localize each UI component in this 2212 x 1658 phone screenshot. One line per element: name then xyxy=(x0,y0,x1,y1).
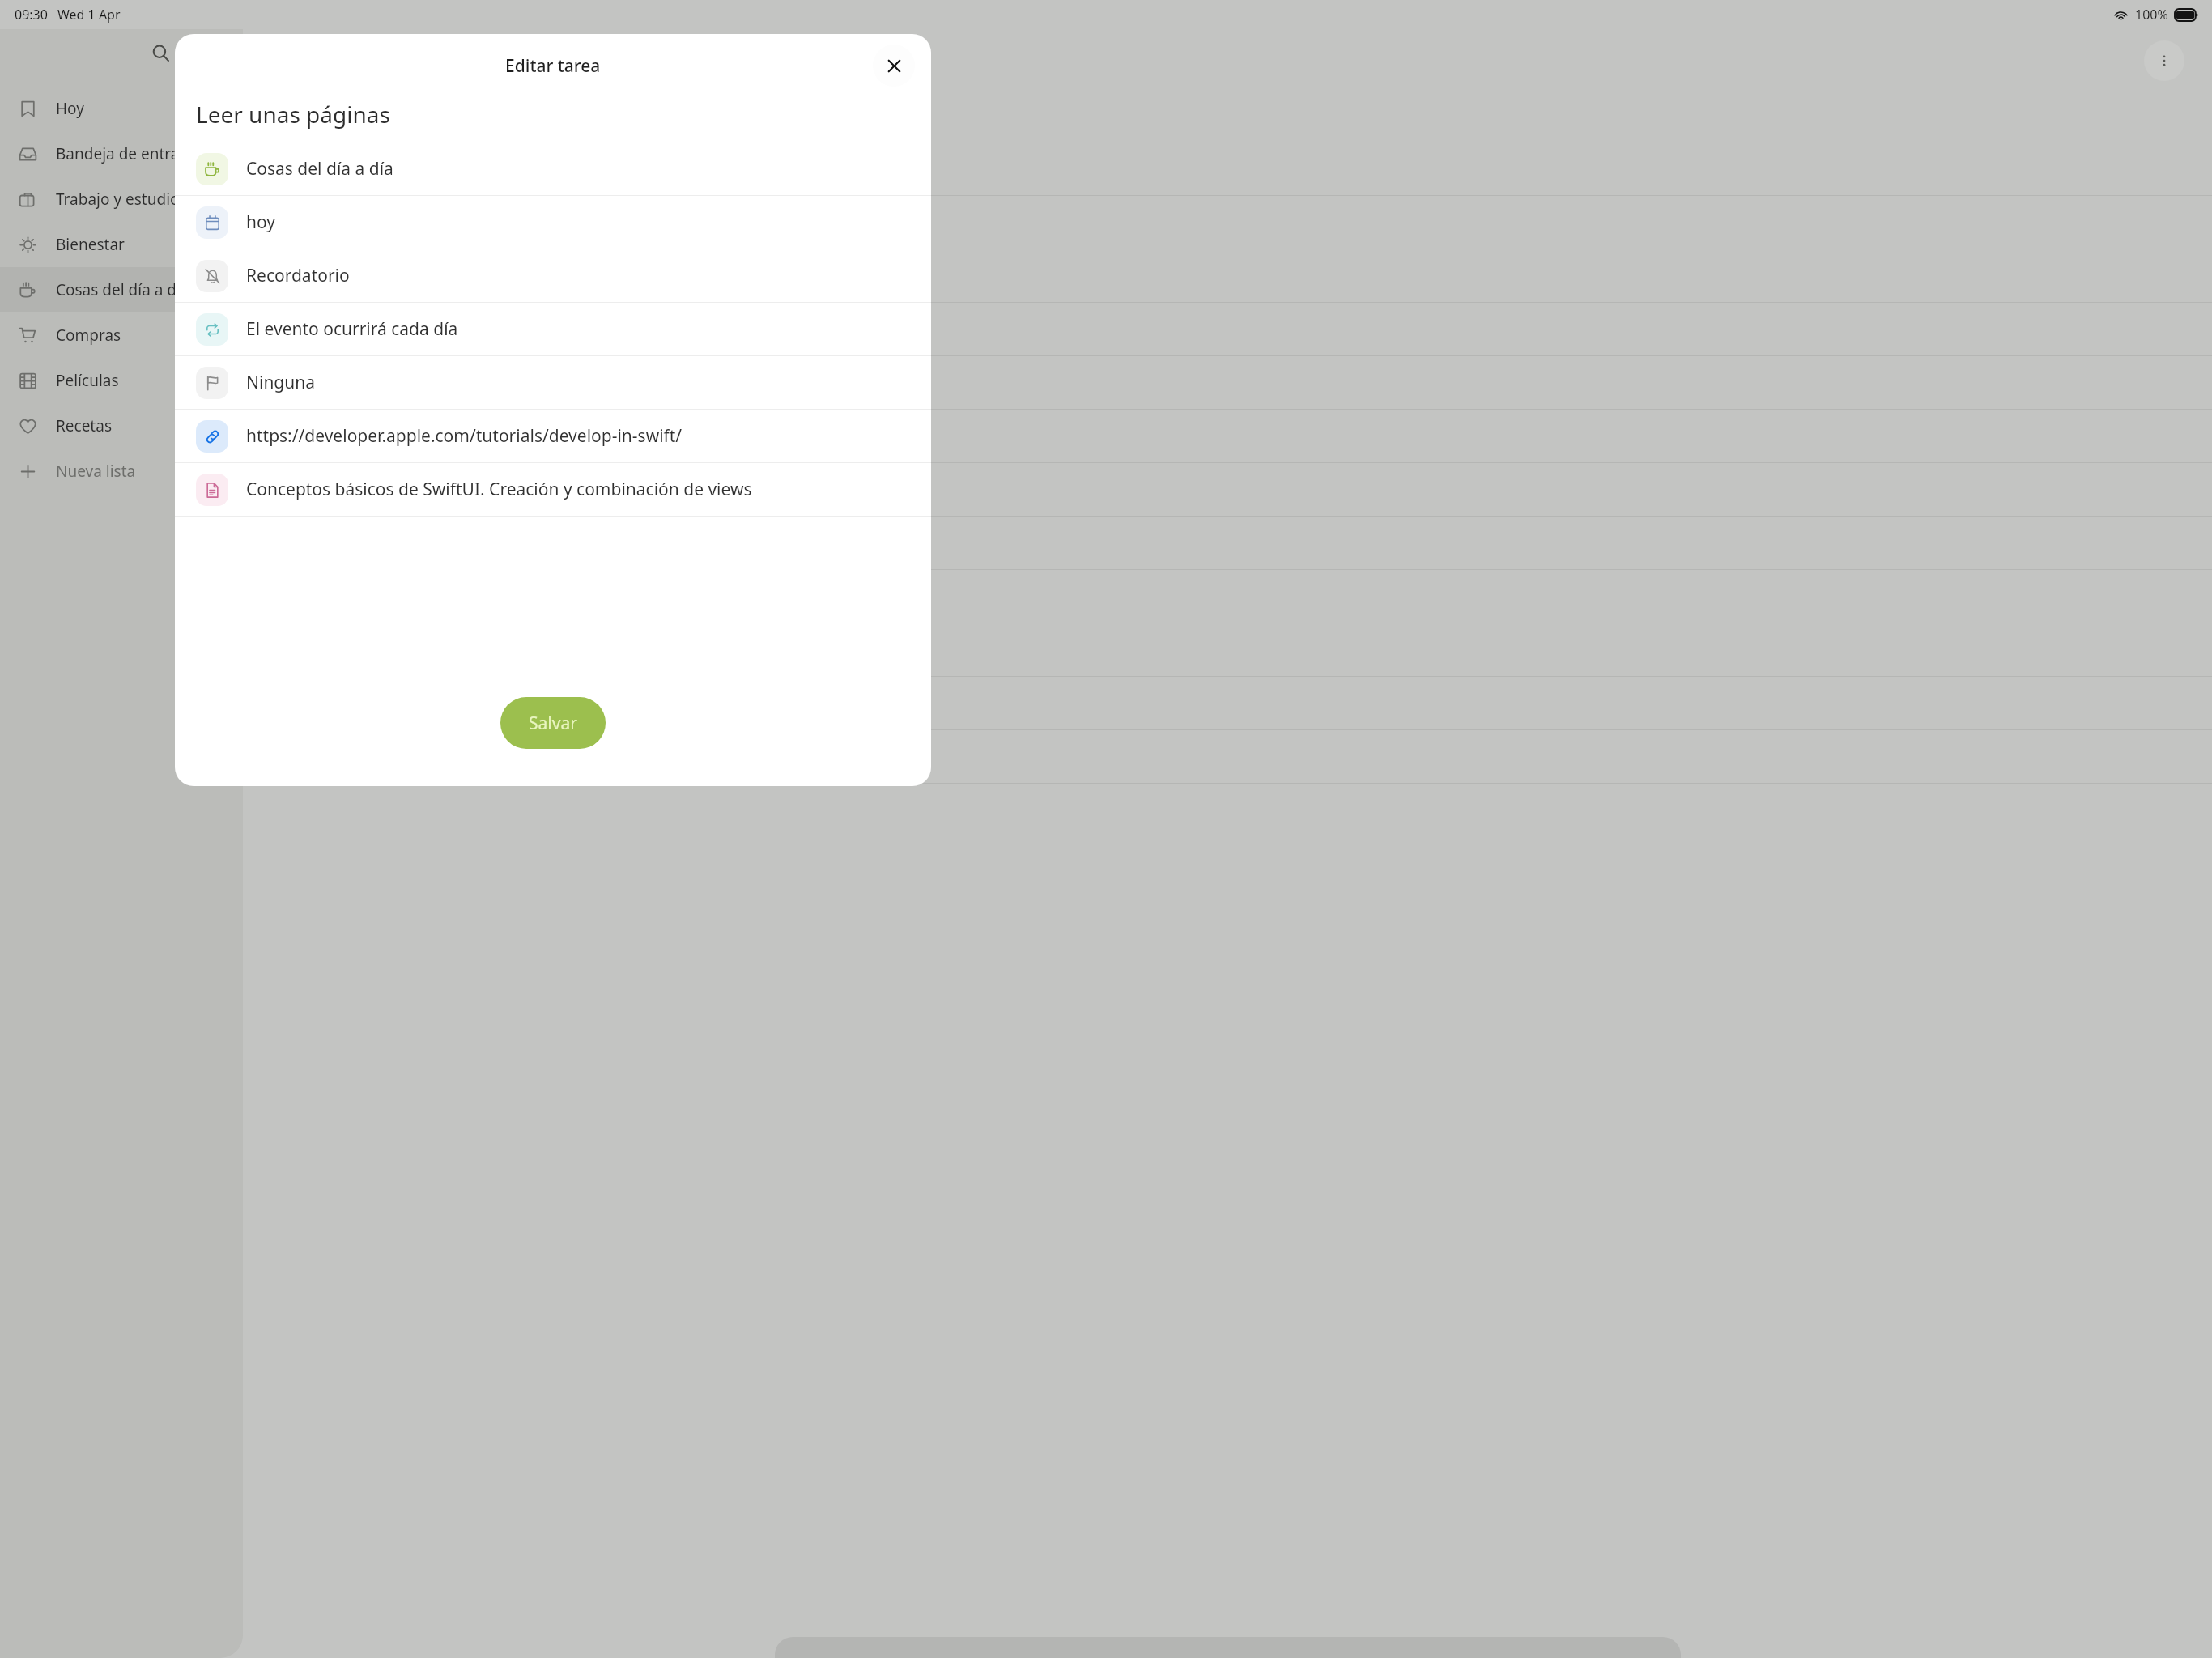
staticText: Bandeja de entrada xyxy=(56,143,198,164)
button[interactable]: Películas xyxy=(0,358,243,403)
button[interactable]: Ninguna xyxy=(175,356,931,409)
button[interactable]: Nueva lista xyxy=(0,449,243,494)
staticText: Bienestar xyxy=(56,234,125,255)
staticText: Salvar xyxy=(529,712,577,735)
staticText: Conceptos básicos de SwiftUI. Creación y… xyxy=(246,478,752,501)
staticText: Cosas del día a día xyxy=(246,157,393,181)
staticText: El evento ocurrirá cada día xyxy=(246,317,458,341)
staticText: Compras xyxy=(56,325,121,346)
staticText: Ninguna xyxy=(246,371,316,394)
button[interactable]: Search xyxy=(143,35,178,70)
staticText: Películas xyxy=(56,370,119,391)
button[interactable]: Cosas del día a día xyxy=(0,267,243,312)
staticText: Cosas del día a día xyxy=(56,279,189,300)
button[interactable]: Recetas xyxy=(0,403,243,449)
button[interactable]: https://developer.apple.com/tutorials/de… xyxy=(175,410,931,462)
button[interactable]: Close xyxy=(873,45,915,87)
staticText: Editar tarea xyxy=(505,54,601,78)
staticText: Wed 1 Apr xyxy=(57,6,121,23)
button[interactable]: Conceptos básicos de SwiftUI. Creación y… xyxy=(175,463,931,516)
button[interactable]: Bienestar xyxy=(0,222,243,267)
staticText: Trabajo y estudios xyxy=(56,189,187,210)
staticText: 100% xyxy=(2135,6,2168,23)
button[interactable]: Cosas del día a día xyxy=(175,142,931,195)
button[interactable]: Trabajo y estudios xyxy=(0,176,243,222)
button[interactable]: Salvar xyxy=(500,697,606,749)
button[interactable]: More options xyxy=(2144,40,2184,81)
button[interactable]: El evento ocurrirá cada día xyxy=(175,303,931,355)
staticText: hoy xyxy=(246,210,275,234)
button[interactable]: Hoy xyxy=(0,86,243,131)
button[interactable]: Bandeja de entrada xyxy=(0,131,243,176)
staticText: Hoy xyxy=(56,98,84,119)
button[interactable]: Compras xyxy=(0,312,243,358)
staticText: Nueva lista xyxy=(56,461,136,482)
button[interactable]: Recordatorio xyxy=(175,249,931,302)
staticText: Leer unas páginas xyxy=(196,99,390,130)
staticText: Recordatorio xyxy=(246,264,350,287)
staticText: Recetas xyxy=(56,415,112,436)
staticText: https://developer.apple.com/tutorials/de… xyxy=(246,424,683,448)
button[interactable]: hoy xyxy=(175,196,931,249)
staticText: 09:30 xyxy=(15,6,48,23)
